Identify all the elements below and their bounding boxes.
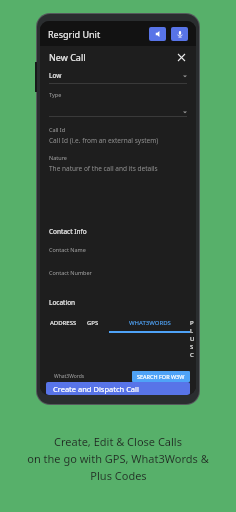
button[interactable] bbox=[49, 110, 187, 117]
staticText: What3Words bbox=[54, 373, 85, 380]
button[interactable]: Nature bbox=[49, 154, 187, 173]
staticText: on the go with GPS, What3Words & bbox=[27, 451, 209, 466]
staticText: Contact Number bbox=[49, 269, 92, 276]
staticText: GPS bbox=[87, 319, 99, 327]
button[interactable]: Microphone bbox=[171, 27, 188, 41]
staticText: New Call bbox=[49, 51, 86, 63]
staticText: Resgrid Unit bbox=[48, 28, 101, 40]
button[interactable]: Contact Name bbox=[49, 246, 187, 253]
staticText: Location bbox=[49, 298, 76, 307]
staticText: Low bbox=[49, 71, 62, 80]
staticText: Create, Edit & Close Calls bbox=[54, 434, 182, 449]
staticText: SEARCH FOR W3W bbox=[137, 373, 185, 380]
button[interactable]: Create and Dispatch Call bbox=[46, 382, 190, 395]
staticText: Nature bbox=[49, 154, 67, 161]
button[interactable]: GPS bbox=[87, 319, 99, 331]
button[interactable]: Contact Number bbox=[49, 269, 187, 276]
staticText: Plus Codes bbox=[90, 468, 147, 483]
button[interactable]: SEARCH FOR W3W bbox=[132, 371, 190, 382]
staticText: The nature of the call and its details bbox=[49, 164, 158, 173]
staticText: Call Id bbox=[49, 126, 66, 133]
button[interactable]: Close bbox=[174, 50, 188, 64]
staticText: WHAT3WORDS bbox=[129, 319, 171, 327]
staticText: Call Id (i.e. from an external system) bbox=[49, 136, 159, 145]
button[interactable]: Broadcast bbox=[149, 27, 166, 41]
button[interactable]: Call Id bbox=[49, 126, 187, 145]
staticText: Create and Dispatch Call bbox=[53, 384, 139, 394]
button[interactable]: ADDRESS bbox=[50, 319, 77, 331]
staticText: Type bbox=[49, 91, 62, 98]
staticText: Contact Info bbox=[49, 227, 87, 236]
button[interactable]: WHAT3WORDS bbox=[109, 319, 190, 333]
staticText: ADDRESS bbox=[50, 319, 77, 327]
staticText: Contact Name bbox=[49, 246, 86, 253]
button[interactable]: Low bbox=[49, 71, 187, 84]
